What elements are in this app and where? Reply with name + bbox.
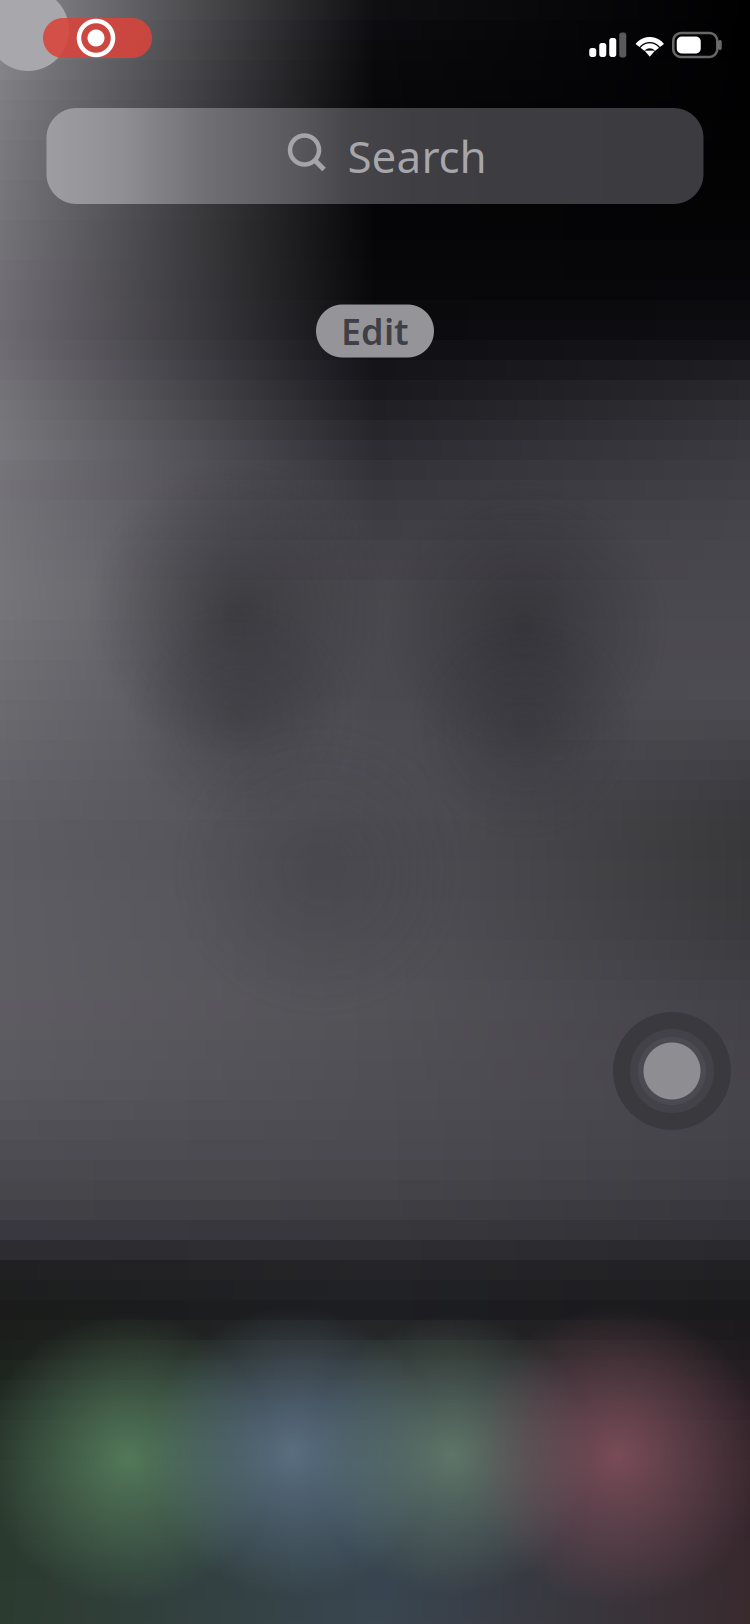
button[interactable]: Stop screen recording [43,18,152,58]
staticText: Edit [341,307,409,355]
staticText: Search [347,127,486,185]
button[interactable]: AssistiveTouch [612,1011,732,1131]
button[interactable]: Edit [316,304,434,357]
button[interactable]: Search [46,108,703,204]
